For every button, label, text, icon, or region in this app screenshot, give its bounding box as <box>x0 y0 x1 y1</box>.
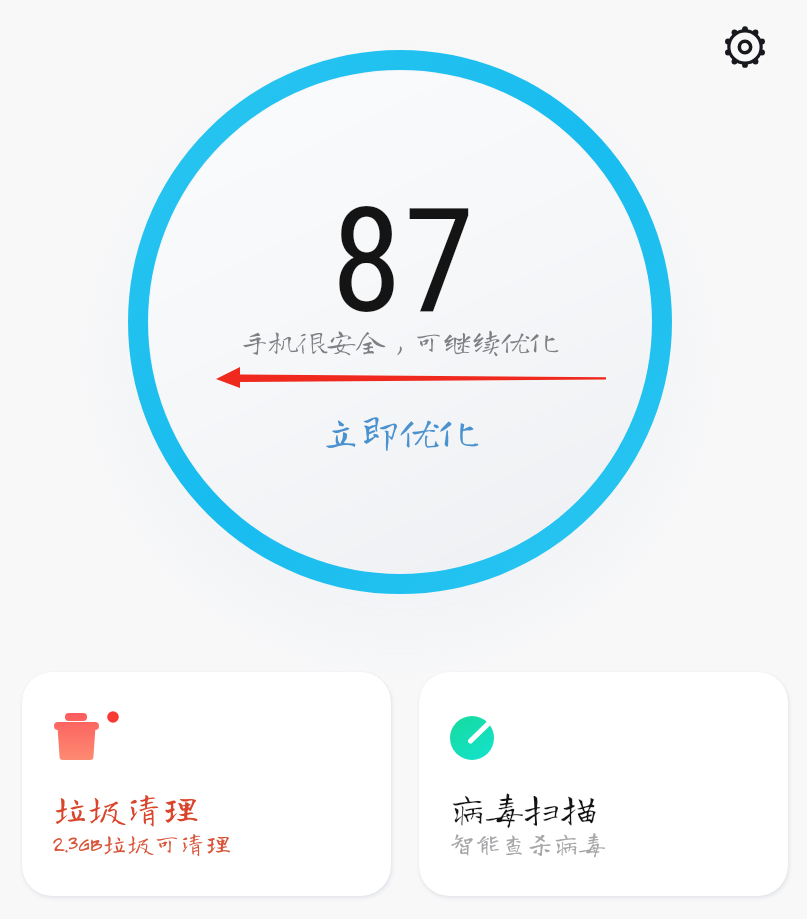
staticText: 垃圾清理 <box>52 789 200 826</box>
button[interactable]: 立即优化 <box>321 411 479 450</box>
staticText: 87 <box>331 177 477 346</box>
button[interactable]: 垃圾清理 <box>22 672 391 896</box>
button[interactable]: 87 <box>128 50 672 594</box>
button[interactable]: Settings <box>719 21 771 73</box>
staticText: 手机很安全，可继续优化 <box>240 326 560 355</box>
button[interactable]: 病毒扫描 <box>419 672 788 896</box>
staticText: 病毒扫描 <box>449 789 597 826</box>
staticText: 2.3GB垃圾可清理 <box>52 830 232 856</box>
staticText: 智能查杀病毒 <box>449 830 606 856</box>
staticText: 立即优化 <box>321 411 479 450</box>
